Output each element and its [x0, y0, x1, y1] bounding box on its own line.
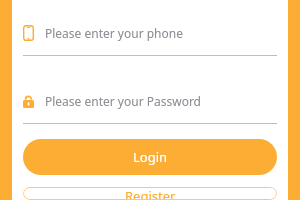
- button[interactable]: Phone number: [12, 19, 288, 47]
- staticText: Please enter your phone: [45, 25, 183, 41]
- staticText: Login: [133, 148, 168, 166]
- other: Phone number: [23, 25, 34, 41]
- staticText: Please enter your Password: [45, 93, 202, 109]
- button[interactable]: Register: [23, 187, 277, 200]
- other: Password: [23, 94, 34, 108]
- staticText: Register: [125, 187, 176, 200]
- button[interactable]: Password: [12, 87, 288, 115]
- button[interactable]: Login: [23, 139, 277, 175]
